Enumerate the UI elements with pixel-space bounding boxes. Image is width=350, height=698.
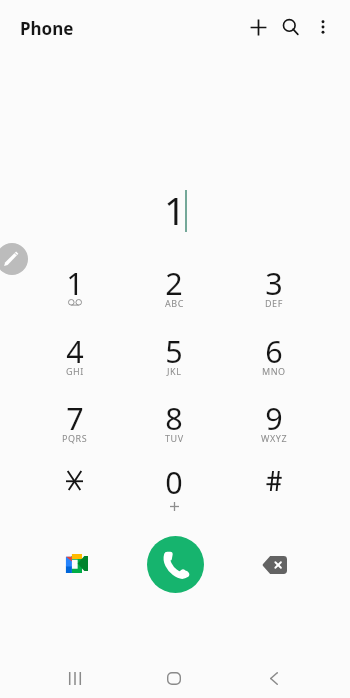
staticText: 2	[165, 262, 183, 304]
staticText: 1	[66, 262, 84, 304]
staticText: GHI	[66, 365, 84, 377]
button[interactable]	[224, 459, 324, 523]
button[interactable]: 0	[124, 459, 224, 523]
button[interactable]: 1	[25, 260, 124, 324]
staticText: JKL	[167, 365, 182, 377]
button[interactable]: Call	[147, 536, 204, 593]
staticText: 4	[66, 330, 84, 372]
staticText: MNO	[262, 365, 286, 377]
staticText: 8	[165, 397, 183, 439]
button[interactable]: Video call	[56, 543, 96, 583]
staticText: 5	[165, 330, 183, 372]
button[interactable]: 9	[224, 395, 324, 459]
staticText: WXYZ	[261, 432, 288, 444]
staticText: PQRS	[62, 432, 88, 444]
button[interactable]: 7	[25, 395, 124, 459]
button[interactable]: Home	[124, 651, 224, 697]
staticText: TUV	[165, 432, 184, 444]
staticText: 3	[265, 262, 283, 304]
button[interactable]: 1	[0, 180, 350, 250]
button[interactable]: Backspace	[254, 545, 294, 585]
button[interactable]: 3	[224, 260, 324, 324]
button[interactable]: Recent apps	[25, 651, 124, 697]
staticText: 0	[165, 461, 183, 503]
button[interactable]: 5	[124, 328, 224, 392]
button[interactable]: 6	[224, 328, 324, 392]
staticText: 1	[164, 184, 186, 236]
button[interactable]: Edit	[0, 243, 28, 275]
staticText: ABC	[165, 297, 184, 309]
button[interactable]: Back	[224, 651, 324, 697]
staticText: Phone	[20, 17, 74, 40]
button[interactable]: Search	[272, 9, 308, 45]
button[interactable]: 8	[124, 395, 224, 459]
button[interactable]: More options	[305, 9, 341, 45]
staticText: 6	[265, 330, 283, 372]
button[interactable]: 4	[25, 328, 124, 392]
staticText: DEF	[265, 297, 283, 309]
staticText: 9	[265, 397, 283, 439]
button[interactable]: Add contact	[240, 9, 276, 45]
button[interactable]	[25, 459, 124, 523]
button[interactable]: 2	[124, 260, 224, 324]
staticText: 7	[66, 397, 84, 439]
